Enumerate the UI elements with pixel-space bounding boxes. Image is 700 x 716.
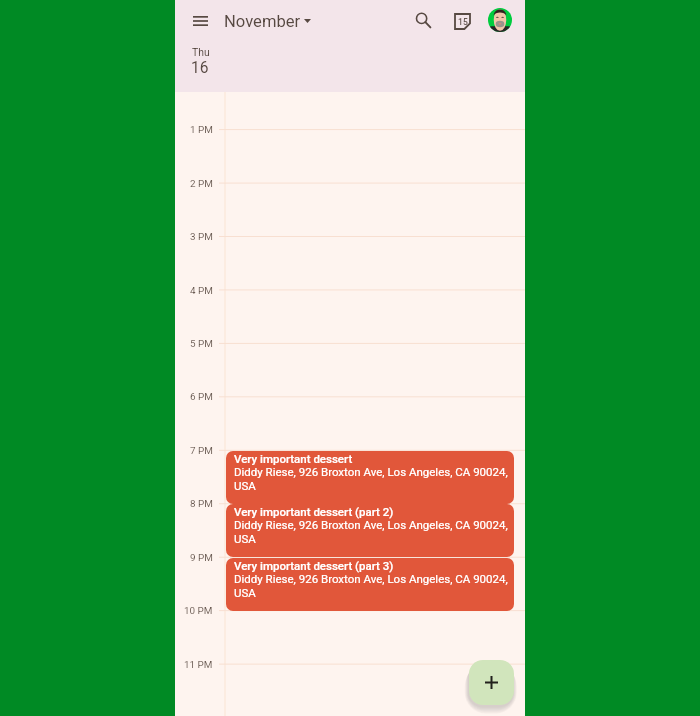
staticText: Very important dessert (part 2): [234, 505, 394, 518]
button[interactable]: Very important dessert (part 2): [226, 504, 514, 557]
staticText: 1 PM: [190, 124, 213, 136]
staticText: Diddy Riese, 926 Broxton Ave, Los Angele…: [234, 465, 511, 493]
staticText: Very important dessert: [234, 452, 353, 465]
staticText: Diddy Riese, 926 Broxton Ave, Los Angele…: [234, 572, 511, 600]
staticText: Diddy Riese, 926 Broxton Ave, Los Angele…: [234, 518, 511, 546]
button[interactable]: Search: [410, 7, 438, 35]
staticText: 4 PM: [190, 285, 213, 297]
staticText: 16: [191, 59, 209, 77]
staticText: 8 PM: [190, 498, 213, 510]
button[interactable]: Jump to today: [448, 7, 476, 35]
staticText: November: [224, 12, 301, 31]
staticText: 3 PM: [190, 231, 213, 243]
staticText: 9 PM: [190, 552, 213, 564]
staticText: 6 PM: [190, 391, 213, 403]
staticText: Thu: [192, 46, 210, 58]
staticText: Very important dessert (part 3): [234, 559, 394, 572]
staticText: 2 PM: [190, 178, 213, 190]
staticText: 7 PM: [190, 445, 213, 457]
button[interactable]: Open navigation menu: [186, 7, 214, 35]
button[interactable]: November: [224, 6, 319, 36]
staticText: 5 PM: [190, 338, 213, 350]
button[interactable]: Very important dessert (part 3): [226, 558, 514, 611]
staticText: 15: [458, 17, 468, 27]
button[interactable]: Very important dessert: [226, 451, 514, 504]
button[interactable]: Account profile: [488, 8, 512, 32]
staticText: 10 PM: [184, 605, 213, 617]
staticText: 11 PM: [184, 659, 213, 671]
button[interactable]: Create new event: [469, 660, 514, 705]
